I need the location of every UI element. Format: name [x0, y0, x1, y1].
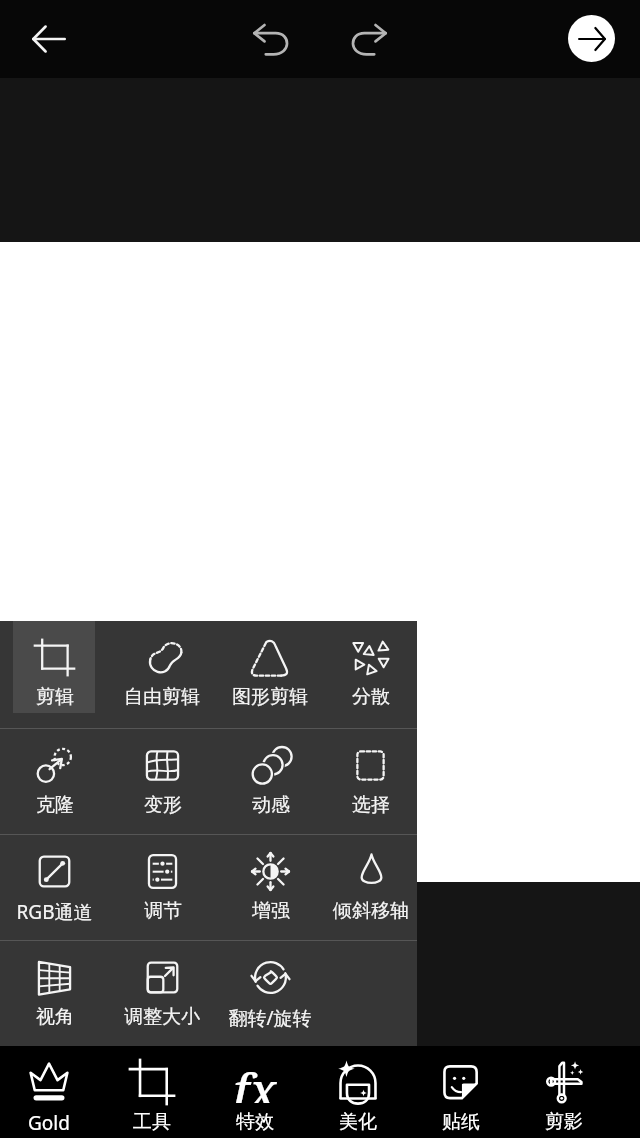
button[interactable]: 克隆 [0, 729, 108, 834]
staticText: 视角 [36, 1005, 74, 1029]
button[interactable]: 调整大小 [108, 941, 216, 1046]
staticText: 增强 [252, 899, 290, 923]
button[interactable]: 图形剪辑 [216, 621, 324, 728]
button[interactable]: 视角 [0, 941, 108, 1046]
staticText: 贴纸 [442, 1110, 480, 1134]
staticText: 动感 [252, 793, 290, 817]
staticText: 调节 [144, 899, 182, 923]
button[interactable]: 剪影 [512, 1046, 615, 1138]
button[interactable]: 动感 [216, 729, 324, 834]
button[interactable]: Back [17, 7, 81, 71]
button[interactable]: Redo [336, 8, 400, 72]
staticText: 变形 [144, 793, 182, 817]
button[interactable]: Apply [568, 15, 615, 62]
button[interactable]: 增强 [216, 835, 324, 940]
staticText: 图形剪辑 [232, 685, 308, 709]
staticText: 美化 [339, 1110, 377, 1134]
staticText: Gold [28, 1110, 70, 1136]
button[interactable]: 剪辑 [0, 621, 108, 728]
staticText: 工具 [133, 1110, 171, 1134]
staticText: 调整大小 [124, 1005, 200, 1029]
button[interactable]: Gold [0, 1046, 100, 1138]
staticText: 剪辑 [36, 685, 74, 709]
staticText: 克隆 [36, 793, 74, 817]
button[interactable]: 自由剪辑 [108, 621, 216, 728]
button[interactable]: Undo [239, 8, 303, 72]
staticText: 自由剪辑 [124, 685, 200, 709]
staticText: 选择 [352, 793, 390, 817]
staticText: RGB通道 [16, 899, 93, 925]
staticText: 特效 [236, 1110, 274, 1134]
staticText: 剪影 [545, 1110, 583, 1134]
button[interactable]: 倾斜移轴 [324, 835, 417, 940]
button[interactable]: 工具 [100, 1046, 203, 1138]
button[interactable]: fx [203, 1046, 306, 1138]
button[interactable]: 翻转/旋转 [216, 941, 324, 1046]
button[interactable]: 选择 [324, 729, 417, 834]
button[interactable]: 变形 [108, 729, 216, 834]
staticText: 分散 [352, 685, 390, 709]
button[interactable]: RGB通道 [0, 835, 108, 940]
button[interactable]: 分散 [324, 621, 417, 728]
button[interactable]: 调节 [108, 835, 216, 940]
button[interactable]: 美化 [306, 1046, 409, 1138]
staticText: 倾斜移轴 [333, 899, 409, 923]
staticText: fx [233, 1057, 277, 1103]
button[interactable]: 贴纸 [409, 1046, 512, 1138]
staticText: 翻转/旋转 [228, 1005, 312, 1031]
